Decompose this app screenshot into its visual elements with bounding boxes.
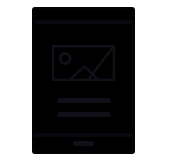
other: Image placeholder (52, 45, 115, 81)
button[interactable] (35, 137, 132, 151)
